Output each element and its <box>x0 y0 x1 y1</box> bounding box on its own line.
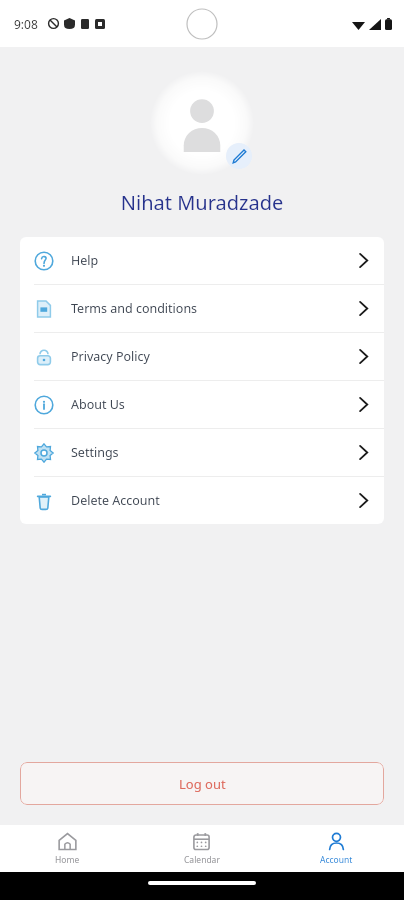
staticText: Settings <box>71 444 119 461</box>
staticText: 9:08 <box>14 16 38 32</box>
staticText: Log out <box>179 775 226 793</box>
button[interactable]: Settings <box>20 429 384 476</box>
staticText: Account <box>320 854 353 866</box>
button[interactable]: Delete Account <box>20 477 384 524</box>
button[interactable]: About Us <box>20 381 384 428</box>
button[interactable]: Account <box>269 825 404 872</box>
staticText: Calendar <box>184 854 220 866</box>
button[interactable]: Edit profile photo <box>226 143 252 169</box>
staticText: Delete Account <box>71 492 160 509</box>
button[interactable]: Terms and conditions <box>20 285 384 332</box>
button[interactable]: Help <box>20 237 384 284</box>
button[interactable]: Home <box>0 825 134 872</box>
staticText: Privacy Policy <box>71 348 150 365</box>
staticText: Home <box>55 854 80 866</box>
button[interactable]: Calendar <box>134 825 269 872</box>
staticText: About Us <box>71 396 125 413</box>
staticText: Terms and conditions <box>71 300 198 317</box>
staticText: Help <box>71 252 99 269</box>
button[interactable]: Log out <box>20 762 384 805</box>
button[interactable]: Privacy Policy <box>20 333 384 380</box>
staticText: Nihat Muradzade <box>0 189 404 216</box>
